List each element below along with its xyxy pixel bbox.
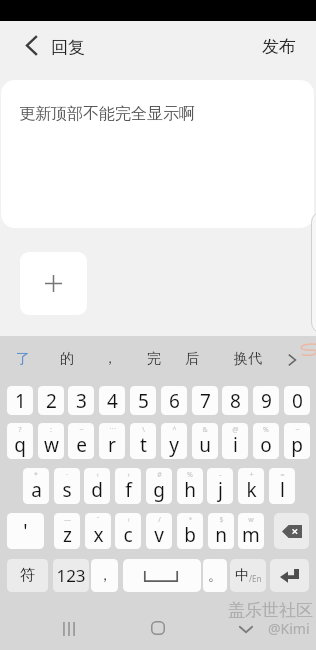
button[interactable]: # (146, 468, 172, 504)
staticText: i (233, 432, 238, 458)
button[interactable]: 123 (53, 559, 89, 592)
button[interactable]: ? (7, 423, 33, 459)
button[interactable]: 了 (6, 336, 40, 382)
staticText: 3 (76, 388, 87, 414)
staticText: 中 (235, 567, 249, 585)
button[interactable]: Recents (49, 609, 89, 649)
button[interactable]: \ (130, 423, 156, 459)
button[interactable]: 8 (222, 386, 248, 415)
button[interactable]: Backspace (274, 513, 309, 549)
staticText: u (199, 432, 211, 458)
button[interactable]: + (238, 468, 264, 504)
staticText: d (91, 477, 103, 503)
button[interactable]: Back (14, 25, 48, 69)
button[interactable]: Hide keyboard (228, 611, 264, 647)
button[interactable]: w (238, 513, 264, 549)
staticText: — (64, 515, 71, 525)
staticText: ， (98, 567, 112, 585)
staticText: ~ (79, 425, 84, 435)
button[interactable]: - (207, 468, 233, 504)
button[interactable]: ˜ (85, 513, 111, 549)
staticText: e (76, 432, 87, 458)
button[interactable]: & (192, 423, 218, 459)
button[interactable]: ^ (161, 423, 187, 459)
staticText: # (157, 470, 162, 480)
button[interactable]: — (54, 513, 80, 549)
staticText: g (153, 477, 165, 503)
button[interactable]: ‹ (84, 468, 110, 504)
button[interactable]: 回复 (51, 21, 85, 80)
staticText: v (154, 522, 164, 548)
staticText: 123 (56, 564, 86, 587)
staticText: /En (249, 573, 262, 584)
staticText: : (50, 425, 52, 435)
button[interactable]: % (253, 423, 279, 459)
button[interactable]: › (115, 468, 141, 504)
staticText: ‹ (127, 515, 130, 525)
button[interactable]: 换代 (224, 336, 272, 382)
staticText: % (263, 425, 269, 435)
button[interactable]: @ (222, 423, 248, 459)
button[interactable]: 6 (161, 386, 187, 415)
button[interactable]: = (269, 468, 295, 504)
staticText: \ (142, 425, 145, 435)
staticText: 2 (46, 388, 57, 414)
button[interactable]: 5 (130, 386, 156, 415)
button[interactable]: Home (138, 608, 178, 648)
staticText: q (14, 432, 26, 458)
button[interactable]: · (54, 468, 80, 504)
staticText: 4 (107, 388, 118, 414)
button[interactable]: 4 (99, 386, 125, 415)
staticText: a (31, 477, 42, 503)
button[interactable]: 的 (50, 336, 84, 382)
staticText: 发布 (262, 36, 296, 57)
button[interactable]: 后 (175, 336, 209, 382)
staticText: ˜ (96, 515, 100, 525)
button[interactable]: * (23, 468, 49, 504)
button[interactable]: 2 (38, 386, 64, 415)
button[interactable]: ＊ (177, 513, 203, 549)
staticText: 完 (147, 350, 161, 368)
button[interactable]: Space (123, 559, 201, 592)
button[interactable]: More candidates (274, 336, 306, 384)
button[interactable]: 。 (203, 559, 227, 592)
button[interactable]: 发布 (262, 21, 296, 80)
button[interactable]: 完 (137, 336, 171, 382)
button[interactable]: : (38, 423, 64, 459)
staticText: 0 (292, 388, 303, 414)
staticText: z (63, 522, 72, 548)
button[interactable]: Add image (20, 252, 87, 315)
button[interactable]: / (146, 513, 172, 549)
staticText: w (44, 432, 59, 458)
staticText: x (93, 522, 104, 548)
staticText: m (242, 522, 260, 548)
button[interactable]: ' (7, 513, 44, 549)
button[interactable]: ~ (284, 423, 310, 459)
button[interactable]: $ (208, 513, 234, 549)
button[interactable]: 0 (284, 386, 310, 415)
button[interactable]: 3 (68, 386, 94, 415)
button[interactable]: 符 (7, 559, 48, 592)
button[interactable]: ~ (68, 423, 94, 459)
button[interactable]: 9 (253, 386, 279, 415)
staticText: & (202, 425, 208, 435)
staticText: t (140, 432, 147, 458)
staticText: 符 (20, 566, 35, 585)
staticText: s (62, 477, 72, 503)
staticText: ' (23, 518, 28, 544)
button[interactable]: ⋯ (99, 423, 125, 459)
button[interactable]: 中 (230, 559, 266, 592)
staticText: y (169, 432, 179, 458)
staticText: l (280, 477, 285, 503)
button[interactable]: 7 (192, 386, 218, 415)
staticText: @ (232, 425, 239, 435)
staticText: / (158, 515, 161, 525)
button[interactable]: Enter (270, 559, 309, 592)
button[interactable]: ， (93, 336, 127, 382)
button[interactable]: 更新顶部不能完全显示啊 (1, 80, 314, 228)
staticText: n (215, 522, 227, 548)
button[interactable]: 1 (7, 386, 33, 415)
button[interactable]: ‹ (115, 513, 141, 549)
button[interactable]: % (177, 468, 203, 504)
button[interactable]: ， (91, 559, 118, 592)
